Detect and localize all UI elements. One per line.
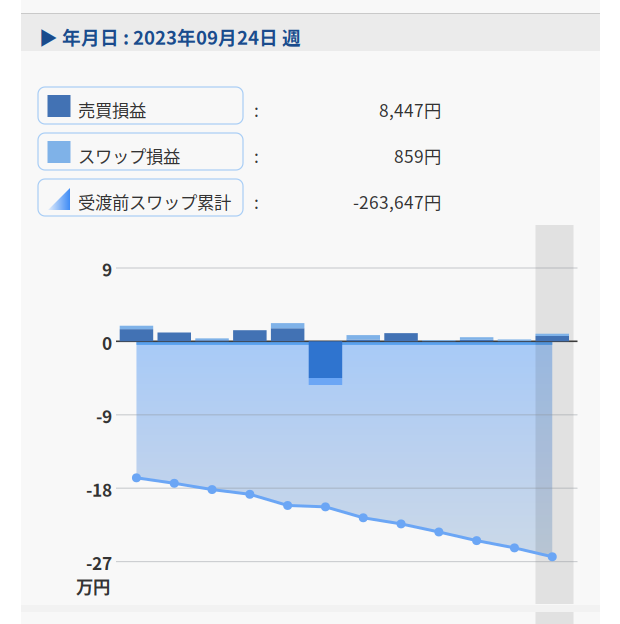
button[interactable]: ▶ 年月日 : 2023年09月24日 週 [0,0,579,37]
staticText: 万円 [76,573,110,599]
staticText: -263,647円 [353,189,441,214]
staticText: : [254,143,259,168]
staticText: 0 [102,330,112,355]
staticText: ▶ 年月日 : 2023年09月24日 週 [39,23,301,50]
staticText: 9 [102,256,112,281]
staticText: スワップ損益 [78,143,180,168]
staticText: -9 [96,403,112,428]
staticText: : [254,189,259,214]
staticText: 8,447円 [379,97,441,122]
staticText: 受渡前スワップ累計 [78,189,231,214]
staticText: 859円 [394,143,441,168]
staticText: -18 [86,477,112,502]
staticText: -27 [86,550,112,575]
staticText: 売買損益 [78,97,146,122]
staticText: : [254,97,259,122]
